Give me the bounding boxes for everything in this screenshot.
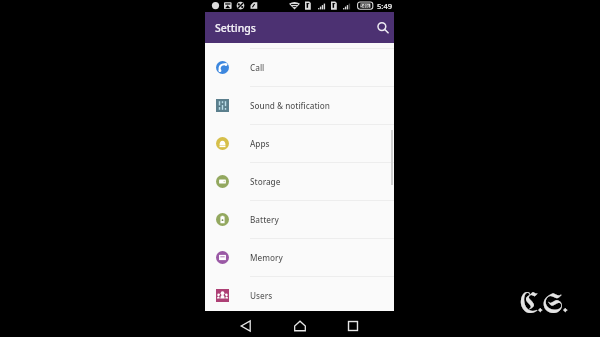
staticText: Memory: [250, 252, 283, 263]
button[interactable]: Back: [234, 314, 258, 337]
staticText: Storage: [250, 176, 281, 187]
button[interactable]: Sound & notification: [205, 86, 394, 124]
staticText: Users: [250, 290, 273, 301]
button[interactable]: Storage: [205, 162, 394, 200]
staticText: Apps: [250, 138, 270, 149]
staticText: Sound & notification: [250, 100, 330, 111]
button[interactable]: Users: [205, 276, 394, 314]
staticText: Settings: [215, 21, 256, 35]
button[interactable]: Call: [205, 48, 394, 86]
button[interactable]: Battery: [205, 200, 394, 238]
staticText: 5:49: [377, 1, 393, 11]
staticText: Call: [250, 62, 265, 73]
button[interactable]: Memory: [205, 238, 394, 276]
staticText: Battery: [250, 214, 279, 225]
staticText: 34%: [360, 3, 370, 9]
button[interactable]: Search: [372, 17, 394, 39]
staticText: C.S.: [520, 292, 569, 319]
button[interactable]: Apps: [205, 124, 394, 162]
button[interactable]: Recents: [341, 314, 365, 337]
button[interactable]: Home: [288, 314, 312, 337]
